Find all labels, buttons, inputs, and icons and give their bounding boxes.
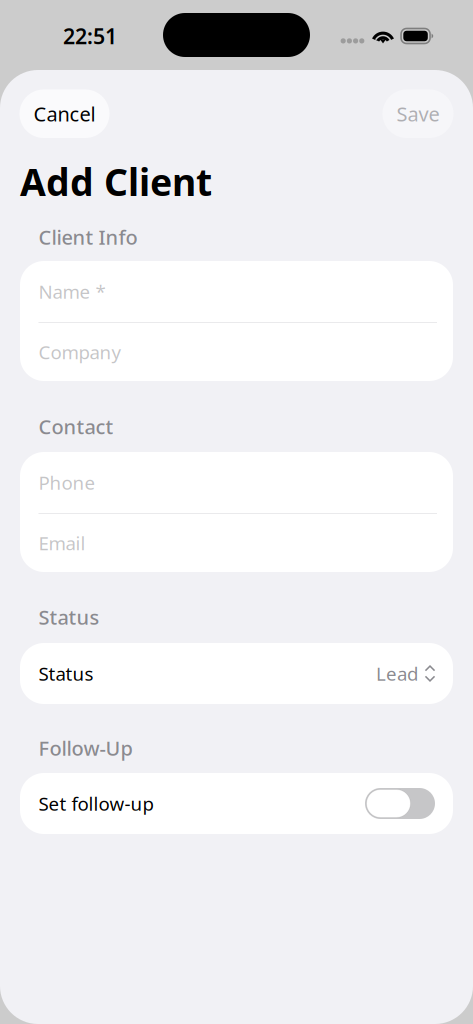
staticText: Follow-Up <box>38 735 132 761</box>
staticText: Name * <box>38 279 105 304</box>
staticText: Contact <box>38 413 113 440</box>
button[interactable]: Set follow-up <box>0 773 473 834</box>
staticText: Set follow-up <box>38 791 153 816</box>
staticText: Add Client <box>20 157 212 206</box>
staticText: 22:51 <box>63 22 117 50</box>
staticText: Client Info <box>38 224 137 250</box>
button[interactable]: Cancel <box>19 89 109 138</box>
button[interactable]: Status <box>0 643 473 704</box>
staticText: Status <box>38 604 99 630</box>
staticText: Email <box>38 531 85 555</box>
staticText: Status <box>38 661 93 686</box>
staticText: Cancel <box>33 100 95 127</box>
staticText: Company <box>38 340 121 364</box>
staticText: Lead <box>376 661 418 686</box>
staticText: Save <box>396 100 439 127</box>
staticText: Phone <box>38 470 95 495</box>
button[interactable]: Save <box>382 89 453 138</box>
